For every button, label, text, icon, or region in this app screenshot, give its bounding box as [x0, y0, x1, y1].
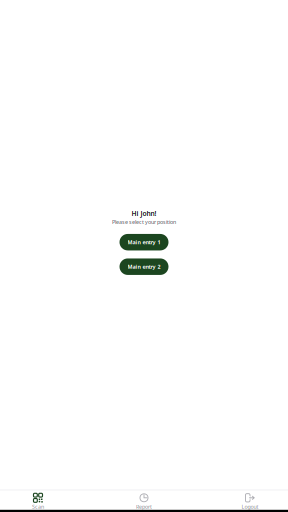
staticText: Hi John!: [131, 209, 156, 218]
staticText: Report: [136, 503, 152, 510]
button[interactable]: Main entry 1: [119, 234, 168, 250]
button[interactable]: Scan: [18, 491, 58, 510]
staticText: Logout: [241, 503, 258, 510]
button[interactable]: Main entry 2: [119, 258, 168, 275]
button[interactable]: Report: [124, 491, 164, 510]
staticText: Main entry 1: [127, 239, 160, 246]
staticText: Scan: [32, 503, 44, 510]
button[interactable]: Logout: [230, 491, 270, 510]
staticText: Please select your position: [112, 218, 176, 225]
staticText: Main entry 2: [127, 263, 160, 270]
